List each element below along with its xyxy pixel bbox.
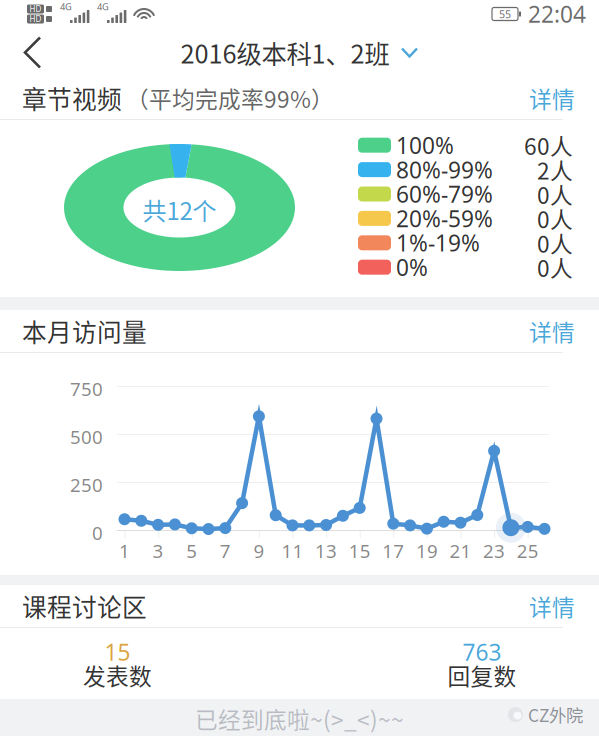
staticText: 3 [153,538,164,563]
staticText: 发表数 [83,659,152,691]
staticText: CZ外院 [528,702,583,727]
button[interactable]: 763 [407,641,557,693]
staticText: 详情 [529,590,575,622]
staticText: HD [29,4,41,14]
staticText: 25 [517,538,539,563]
staticText: HD [29,14,41,24]
staticText: 55 [499,7,511,21]
staticText: 250 [70,472,103,497]
staticText: 750 [70,376,103,401]
staticText: 0人 [537,251,573,284]
staticText: 13 [315,538,337,563]
staticText: 22:04 [528,0,586,29]
staticText: 0% [396,252,428,283]
staticText: 60人 [524,129,573,162]
button[interactable]: 详情 [515,582,575,630]
button[interactable]: 15 [42,641,192,693]
staticText: 11 [281,538,303,563]
staticText: 15 [104,637,130,667]
staticText: 60%-79% [396,179,493,209]
staticText: 19 [416,538,438,563]
staticText: 23 [483,538,505,563]
staticText: 0 [92,520,103,545]
staticText: 详情 [529,82,575,114]
staticText: 763 [462,637,501,667]
staticText: 9 [253,538,264,563]
staticText: 已经到底啦~(>_<)~~ [195,702,404,735]
staticText: 100% [396,130,454,161]
staticText: 1%-19% [396,227,480,258]
staticText: 共12个 [142,192,216,227]
staticText: 20%-59% [396,203,493,234]
staticText: 0人 [537,226,573,259]
staticText: 课程讨论区 [22,588,147,624]
staticText: 4G [60,0,72,13]
staticText: 17 [382,538,404,563]
staticText: 5 [186,538,197,563]
staticText: 本月访问量 [22,313,147,349]
staticText: 0人 [537,178,573,210]
staticText: 2016级本科1、2班 [180,34,389,71]
staticText: 4G [97,0,109,13]
staticText: 章节视频 [22,80,122,116]
staticText: 回复数 [447,659,516,691]
button[interactable]: 详情 [515,307,575,355]
staticText: 0人 [537,202,573,235]
button[interactable]: Back [17,30,59,74]
staticText: （平均完成率99%） [126,82,334,114]
staticText: 详情 [529,315,575,347]
staticText: 500 [70,424,103,449]
staticText: 80%-99% [396,154,493,185]
staticText: 21 [449,538,471,563]
staticText: 1 [119,538,130,563]
button[interactable]: 详情 [515,74,575,122]
staticText: 15 [349,538,371,563]
staticText: 7 [220,538,231,563]
staticText: 2人 [537,153,573,186]
